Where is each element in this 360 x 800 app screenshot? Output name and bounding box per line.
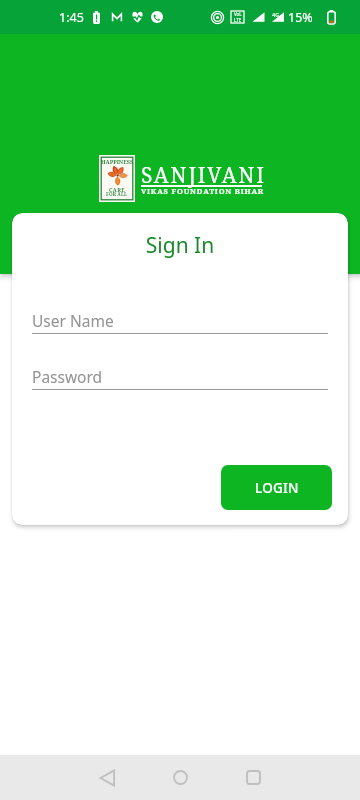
staticText: LOGIN [255,479,299,497]
button[interactable]: Back [83,755,131,800]
staticText: CARE [109,186,126,193]
staticText: Sign In [12,231,348,260]
staticText: 4G [272,11,280,18]
button[interactable]: LOGIN [221,465,332,510]
staticText: LTE [234,17,242,23]
staticText: 1:45 [59,9,84,26]
button[interactable]: Home [156,755,204,800]
staticText: User Name [32,310,114,331]
staticText: 15% [288,9,313,26]
staticText: FOR ALL [106,191,128,197]
staticText: VIKAS FOUNDATION BIHAR [141,186,265,196]
button[interactable]: Recent apps [229,755,277,800]
staticText: Password [32,366,103,387]
staticText: HAPPINESS [101,158,134,165]
staticText: SANJIVANI [141,161,266,190]
staticText: VoL [234,11,242,17]
